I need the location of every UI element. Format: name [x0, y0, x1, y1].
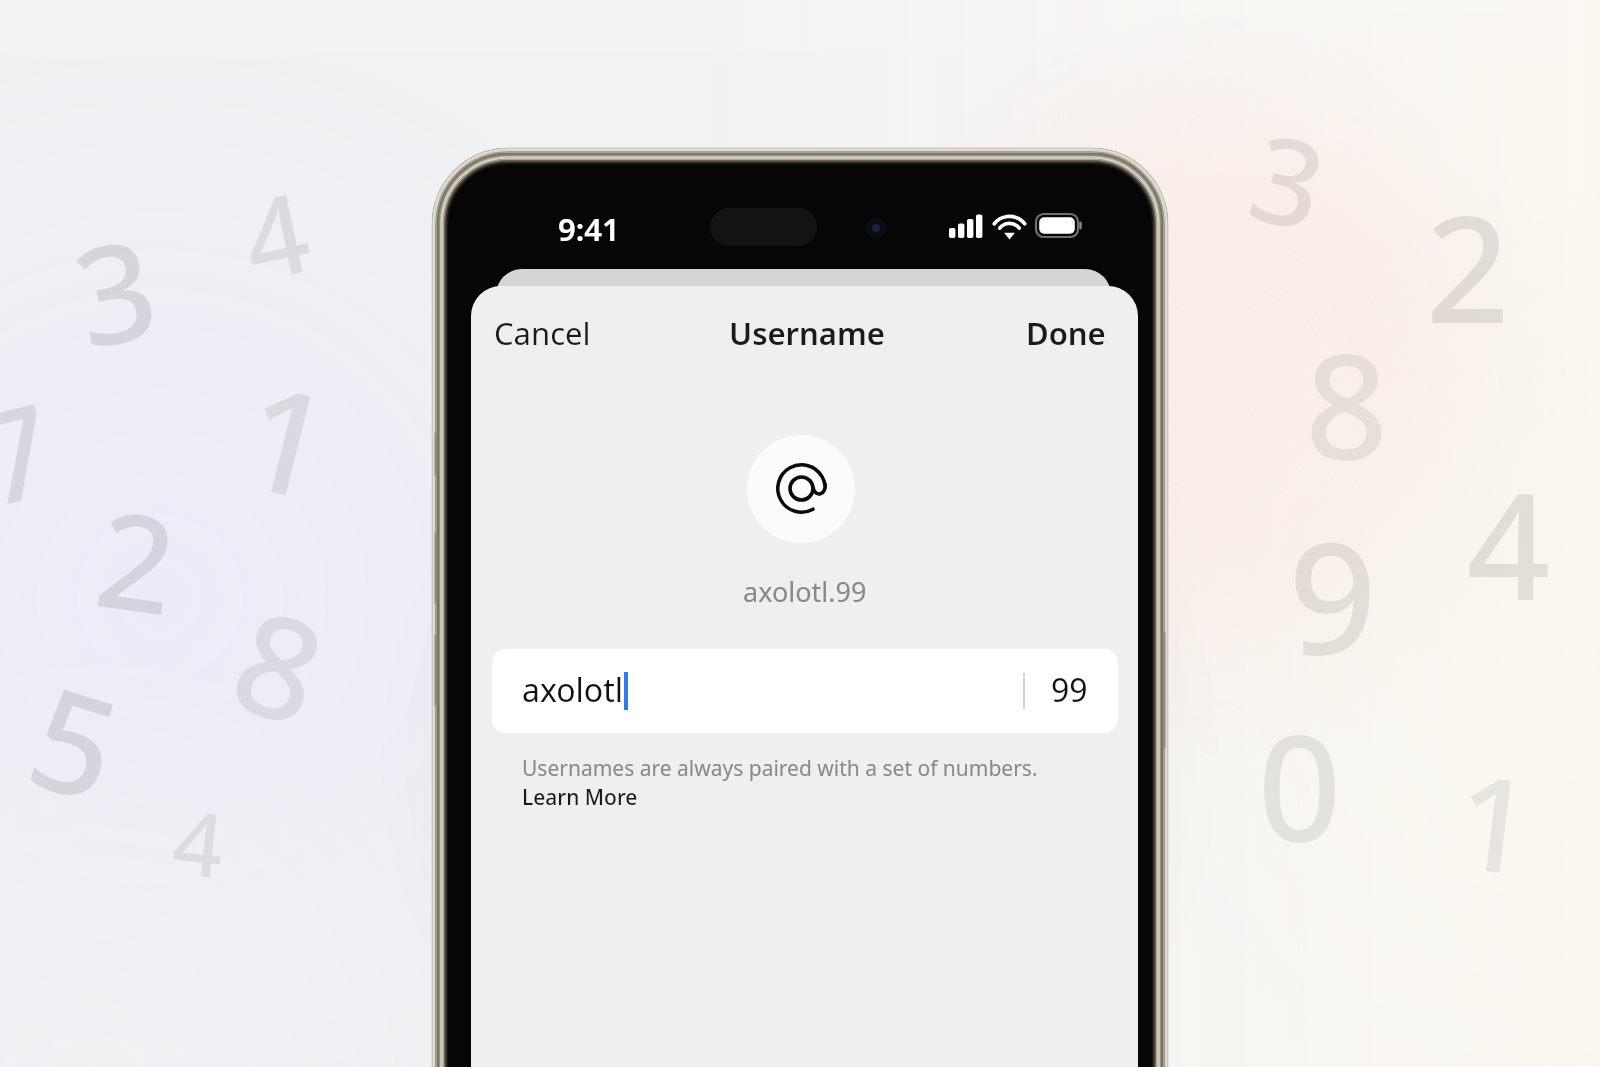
- staticText: 4: [229, 154, 322, 314]
- staticText: 2: [86, 464, 187, 654]
- staticText: Cancel: [494, 312, 591, 354]
- staticText: 2: [1425, 166, 1510, 366]
- staticText: Done: [1026, 312, 1106, 354]
- staticText: 9:41: [558, 208, 620, 250]
- staticText: axolotl: [522, 668, 624, 712]
- staticText: 3: [59, 192, 171, 389]
- staticText: 99: [1051, 668, 1088, 712]
- staticText: axolotl.99: [743, 573, 867, 610]
- staticText: 7: [0, 359, 71, 544]
- staticText: 1: [1446, 729, 1542, 914]
- button[interactable]: Learn More: [522, 783, 638, 812]
- staticText: Username: [729, 312, 885, 354]
- staticText: 8: [1305, 305, 1388, 502]
- staticText: Learn More: [522, 783, 638, 812]
- staticText: 9: [1288, 488, 1377, 699]
- staticText: 0: [1257, 685, 1342, 885]
- staticText: 3: [1235, 92, 1342, 267]
- staticText: 1: [224, 334, 350, 543]
- staticText: 5: [9, 637, 142, 844]
- button[interactable]: axolotl: [492, 649, 1118, 733]
- staticText: Usernames are always paired with a set o…: [522, 754, 1038, 783]
- button[interactable]: Done: [1022, 304, 1110, 362]
- staticText: 4: [167, 780, 230, 904]
- staticText: 8: [211, 560, 348, 768]
- other: Profile avatar: [747, 435, 855, 543]
- button[interactable]: Cancel: [490, 304, 595, 362]
- staticText: 4: [1466, 443, 1551, 643]
